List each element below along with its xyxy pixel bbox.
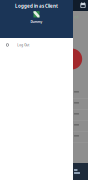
button[interactable]: Calendar bbox=[80, 2, 88, 9]
staticText: Logged in as Client bbox=[15, 3, 58, 9]
button[interactable]: Log Out bbox=[0, 38, 73, 52]
staticText: ed bbox=[74, 14, 78, 19]
staticText: Dummy bbox=[30, 20, 42, 24]
staticText: Log Out bbox=[17, 43, 29, 47]
